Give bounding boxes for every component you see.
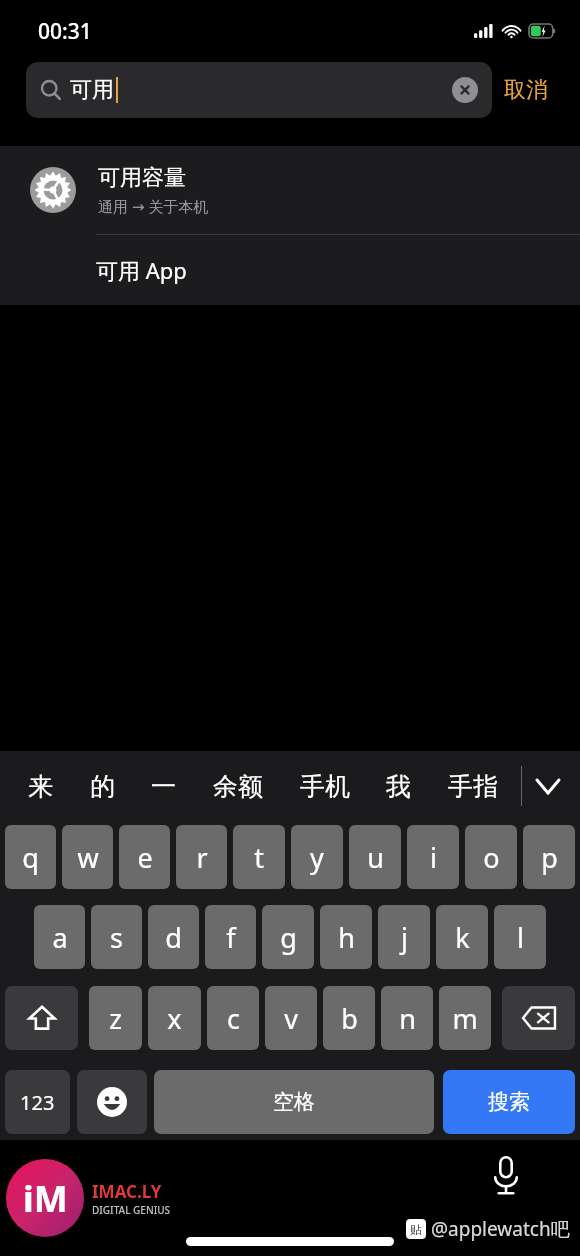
button[interactable]: 余额: [209, 763, 267, 810]
staticText: 手指: [448, 771, 498, 802]
staticText: 一: [151, 771, 176, 802]
button[interactable]: l: [494, 905, 546, 969]
button[interactable]: i: [407, 825, 459, 889]
button[interactable]: Backspace: [502, 986, 575, 1050]
button[interactable]: o: [465, 825, 517, 889]
staticText: t: [254, 839, 264, 876]
staticText: f: [226, 919, 236, 956]
button[interactable]: 一: [147, 763, 180, 810]
staticText: c: [227, 1000, 240, 1037]
button[interactable]: q: [5, 825, 56, 889]
button[interactable]: 搜索: [443, 1070, 575, 1134]
staticText: IMAC.LY: [92, 1180, 162, 1203]
staticText: 我: [386, 771, 411, 802]
button[interactable]: a: [34, 905, 85, 969]
button[interactable]: 123: [5, 1070, 70, 1134]
button[interactable]: 手机: [296, 763, 354, 810]
staticText: v: [284, 1000, 298, 1037]
staticText: a: [52, 919, 68, 956]
button[interactable]: 取消: [492, 68, 560, 112]
button[interactable]: r: [176, 825, 227, 889]
staticText: x: [167, 1000, 182, 1037]
button[interactable]: Dictate: [484, 1154, 528, 1198]
staticText: 可用 App: [96, 255, 187, 285]
staticText: e: [137, 839, 153, 876]
button[interactable]: m: [439, 986, 491, 1050]
button[interactable]: 可用容量: [0, 146, 580, 234]
button[interactable]: 空格: [154, 1070, 434, 1134]
staticText: 余额: [213, 771, 263, 802]
staticText: 00:31: [38, 17, 92, 46]
staticText: k: [455, 919, 470, 956]
staticText: r: [196, 839, 208, 876]
button[interactable]: p: [523, 825, 575, 889]
staticText: y: [310, 839, 324, 876]
staticText: g: [280, 919, 297, 956]
staticText: @applewatch吧: [431, 1216, 570, 1242]
button[interactable]: x: [148, 986, 201, 1050]
staticText: DIGITAL GENIUS: [92, 1203, 171, 1217]
button[interactable]: j: [378, 905, 430, 969]
button[interactable]: Clear text: [452, 77, 478, 103]
staticText: i: [430, 839, 437, 876]
button[interactable]: 可用 App: [0, 235, 580, 305]
button[interactable]: s: [91, 905, 142, 969]
staticText: m: [452, 1000, 478, 1037]
button[interactable]: u: [349, 825, 401, 889]
button[interactable]: n: [381, 986, 433, 1050]
staticText: 可用: [70, 76, 114, 104]
staticText: 123: [20, 1089, 55, 1116]
staticText: 空格: [273, 1089, 315, 1115]
staticText: 通用 → 关于本机: [98, 196, 209, 216]
staticText: j: [401, 919, 408, 956]
staticText: u: [367, 839, 384, 876]
button[interactable]: e: [119, 825, 170, 889]
button[interactable]: Hide keyboard: [530, 768, 566, 804]
staticText: 手机: [300, 771, 350, 802]
staticText: 可用容量: [98, 164, 186, 192]
staticText: o: [483, 839, 500, 876]
button[interactable]: h: [320, 905, 372, 969]
staticText: 来: [28, 771, 53, 802]
button[interactable]: d: [148, 905, 199, 969]
button[interactable]: w: [62, 825, 113, 889]
button[interactable]: Shift: [5, 986, 78, 1050]
staticText: d: [165, 919, 182, 956]
staticText: p: [541, 839, 558, 876]
staticText: n: [399, 1000, 416, 1037]
button[interactable]: y: [291, 825, 343, 889]
button[interactable]: f: [205, 905, 256, 969]
button[interactable]: b: [323, 986, 375, 1050]
staticText: w: [77, 839, 99, 876]
staticText: s: [110, 919, 123, 956]
staticText: h: [338, 919, 355, 956]
button[interactable]: 的: [86, 763, 119, 810]
staticText: q: [22, 839, 39, 876]
staticText: l: [517, 919, 524, 956]
staticText: b: [341, 1000, 358, 1037]
button[interactable]: z: [89, 986, 142, 1050]
button[interactable]: v: [265, 986, 317, 1050]
button[interactable]: 手指: [444, 763, 502, 810]
button[interactable]: t: [233, 825, 285, 889]
staticText: 贴: [410, 1222, 422, 1237]
button[interactable]: 我: [382, 763, 415, 810]
staticText: 的: [90, 771, 115, 802]
button[interactable]: Emoji: [77, 1070, 147, 1134]
staticText: z: [109, 1000, 122, 1037]
staticText: 搜索: [488, 1089, 530, 1115]
staticText: 取消: [504, 76, 548, 104]
button[interactable]: 可用: [26, 62, 492, 118]
button[interactable]: c: [207, 986, 259, 1050]
button[interactable]: 来: [24, 763, 57, 810]
button[interactable]: k: [436, 905, 488, 969]
staticText: iM: [23, 1174, 68, 1223]
button[interactable]: g: [262, 905, 314, 969]
